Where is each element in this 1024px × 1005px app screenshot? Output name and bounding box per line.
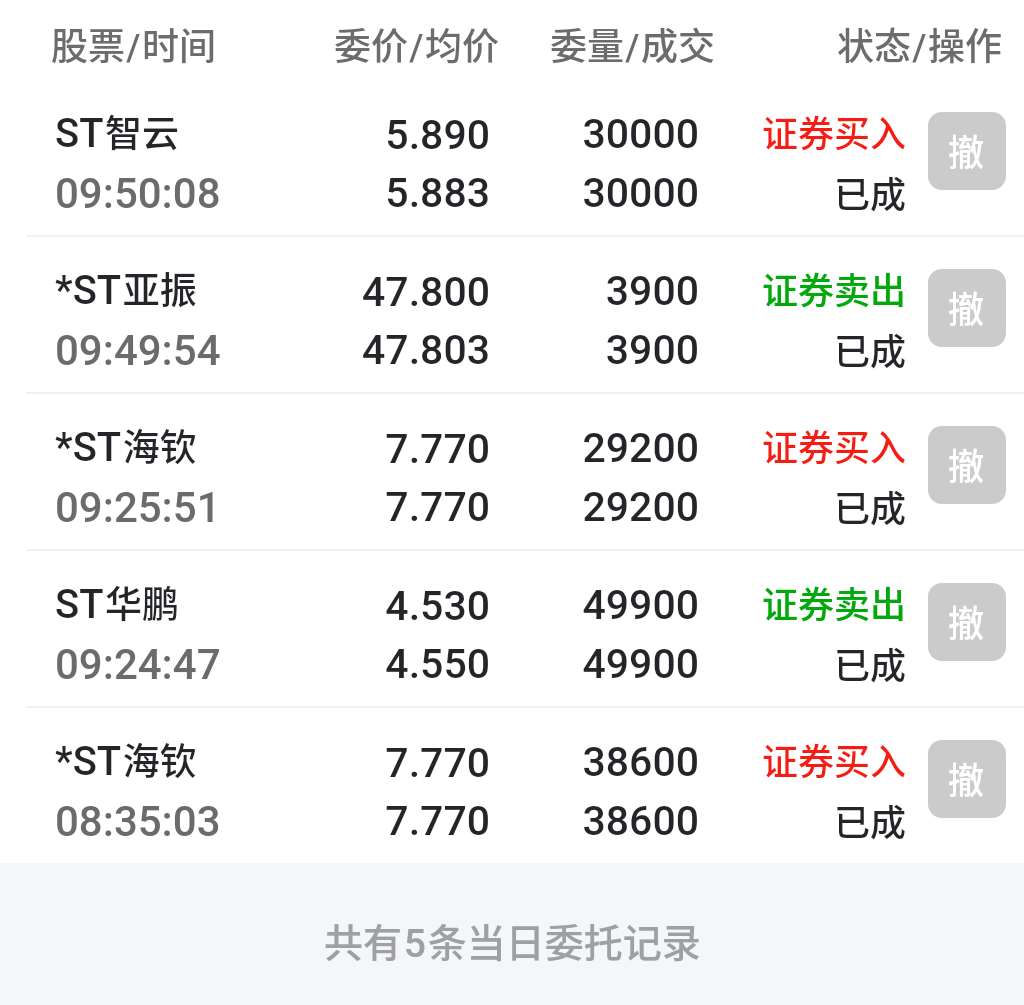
staticText: 已成 — [706, 323, 906, 375]
staticText: 09:24:47 — [55, 640, 221, 689]
staticText: 38600 — [499, 797, 699, 845]
button[interactable]: 撤单 Cancel order — [928, 426, 1006, 504]
staticText: *ST 海钦 — [55, 418, 197, 472]
button[interactable]: 撤单 Cancel order — [928, 583, 1006, 661]
staticText: 已成 — [706, 166, 906, 218]
staticText: 5.890 — [240, 111, 490, 159]
staticText: 已成 — [706, 637, 906, 689]
button[interactable]: ST 智云 — [0, 80, 1024, 235]
staticText: 3900 — [499, 326, 699, 374]
staticText: 4.530 — [240, 582, 490, 630]
staticText: 证券买入 — [706, 419, 906, 471]
staticText: 5.883 — [240, 169, 490, 217]
staticText: 撤 — [948, 281, 985, 333]
staticText: 29200 — [499, 424, 699, 472]
staticText: 08:35:03 — [55, 797, 221, 846]
staticText: 7.770 — [240, 425, 490, 473]
staticText: 7.770 — [240, 483, 490, 531]
staticText: ST 智云 — [55, 104, 180, 158]
button[interactable]: 撤单 Cancel order — [928, 269, 1006, 347]
staticText: *ST 海钦 — [55, 732, 197, 786]
staticText: 09:49:54 — [55, 326, 221, 375]
staticText: 7.770 — [240, 739, 490, 787]
staticText: 证券卖出 — [706, 576, 906, 628]
staticText: 证券买入 — [706, 105, 906, 157]
staticText: 证券买入 — [706, 733, 906, 785]
staticText: 共有 5 条当日委托记录 — [324, 912, 701, 968]
staticText: 47.803 — [240, 326, 490, 374]
staticText: 撤 — [948, 438, 985, 490]
staticText: 09:50:08 — [55, 169, 221, 218]
staticText: 状态 / 操作 — [837, 17, 1002, 71]
button[interactable]: *ST 海钦 — [0, 708, 1024, 863]
staticText: 49900 — [499, 581, 699, 629]
staticText: 09:25:51 — [55, 483, 221, 532]
staticText: 4.550 — [240, 640, 490, 688]
staticText: 撤 — [948, 595, 985, 647]
staticText: 30000 — [499, 110, 699, 158]
staticText: ST 华鹏 — [55, 575, 180, 629]
button[interactable]: *ST 海钦 — [0, 394, 1024, 549]
staticText: 已成 — [706, 480, 906, 532]
staticText: 38600 — [499, 738, 699, 786]
staticText: 撤 — [948, 752, 985, 804]
staticText: 7.770 — [240, 797, 490, 845]
staticText: 47.800 — [240, 268, 490, 316]
staticText: 29200 — [499, 483, 699, 531]
staticText: 已成 — [706, 794, 906, 846]
staticText: 证券卖出 — [706, 262, 906, 314]
staticText: 撤 — [948, 124, 985, 176]
staticText: 30000 — [499, 169, 699, 217]
staticText: *ST 亚振 — [55, 261, 197, 315]
button[interactable]: 撤单 Cancel order — [928, 740, 1006, 818]
button[interactable]: 撤单 Cancel order — [928, 112, 1006, 190]
staticText: 委价 / 均价 — [334, 17, 499, 71]
staticText: 3900 — [499, 267, 699, 315]
staticText: 股票 / 时间 — [51, 17, 216, 71]
staticText: 委量 / 成交 — [550, 17, 715, 71]
button[interactable]: ST 华鹏 — [0, 551, 1024, 706]
staticText: 49900 — [499, 640, 699, 688]
button[interactable]: *ST 亚振 — [0, 237, 1024, 392]
